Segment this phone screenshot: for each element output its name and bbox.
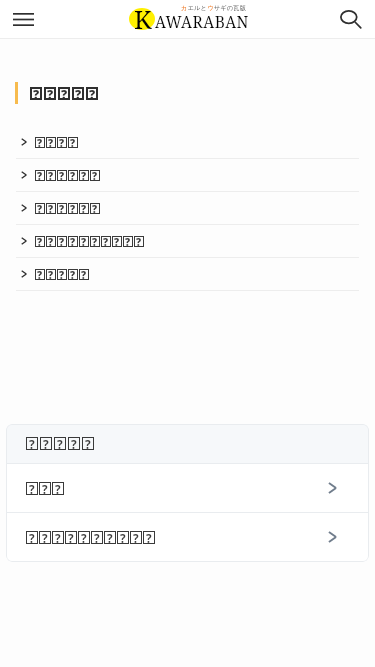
staticText: ?	[48, 137, 54, 147]
staticText: ?	[57, 437, 63, 449]
staticText: ?	[48, 236, 54, 246]
staticText: ?	[146, 531, 152, 543]
staticText: ?	[70, 203, 76, 213]
staticText: ?	[114, 236, 120, 246]
staticText: ?	[37, 203, 43, 213]
button[interactable]: ?	[6, 513, 369, 561]
staticText: ?	[81, 203, 87, 213]
staticText: ?	[42, 482, 48, 494]
staticText: ?	[29, 482, 35, 494]
staticText: ?	[107, 531, 113, 543]
staticText: ?	[81, 269, 87, 279]
staticText: ?	[133, 531, 139, 543]
button[interactable]: Menu	[8, 4, 38, 34]
staticText: ?	[55, 531, 61, 543]
button[interactable]: ?	[16, 126, 359, 158]
staticText: ?	[92, 170, 98, 180]
staticText: ?	[59, 236, 65, 246]
staticText: ?	[85, 437, 91, 449]
staticText: ?	[59, 203, 65, 213]
staticText: ?	[70, 236, 76, 246]
staticText: ?	[48, 170, 54, 180]
staticText: ?	[81, 170, 87, 180]
staticText: ?	[42, 531, 48, 543]
staticText: ?	[37, 236, 43, 246]
staticText: ?	[70, 137, 76, 147]
staticText: ?	[29, 531, 35, 543]
staticText: ?	[70, 170, 76, 180]
staticText: ?	[94, 531, 100, 543]
staticText: ?	[47, 87, 54, 99]
button[interactable]: ?	[16, 192, 359, 224]
staticText: ?	[70, 269, 76, 279]
staticText: ?	[59, 269, 65, 279]
staticText: ?	[120, 531, 126, 543]
staticText: ?	[48, 269, 54, 279]
staticText: ?	[68, 531, 74, 543]
staticText: ?	[43, 437, 49, 449]
staticText: K	[134, 2, 152, 36]
button[interactable]: ?	[16, 225, 359, 257]
staticText: ?	[33, 87, 40, 99]
staticText: ?	[92, 236, 98, 246]
staticText: ?	[59, 170, 65, 180]
staticText: ?	[89, 87, 96, 99]
staticText: ?	[71, 437, 77, 449]
staticText: ?	[59, 137, 65, 147]
staticText: ?	[61, 87, 68, 99]
staticText: ?	[37, 269, 43, 279]
staticText: ?	[75, 87, 82, 99]
button[interactable]: ?	[6, 464, 369, 512]
staticText: ?	[48, 203, 54, 213]
staticText: ?	[37, 170, 43, 180]
staticText: ?	[37, 137, 43, 147]
staticText: AWARABAN	[155, 11, 249, 32]
staticText: ?	[136, 236, 142, 246]
staticText: ?	[92, 203, 98, 213]
button[interactable]: ?	[16, 159, 359, 191]
staticText: ?	[125, 236, 131, 246]
staticText: ?	[81, 236, 87, 246]
staticText: カエルとウサギの瓦版	[181, 4, 247, 12]
staticText: ?	[81, 531, 87, 543]
button[interactable]: ?	[16, 258, 359, 290]
staticText: ?	[55, 482, 61, 494]
button[interactable]: Search	[336, 4, 366, 34]
staticText: ?	[29, 437, 35, 449]
staticText: ?	[103, 236, 109, 246]
